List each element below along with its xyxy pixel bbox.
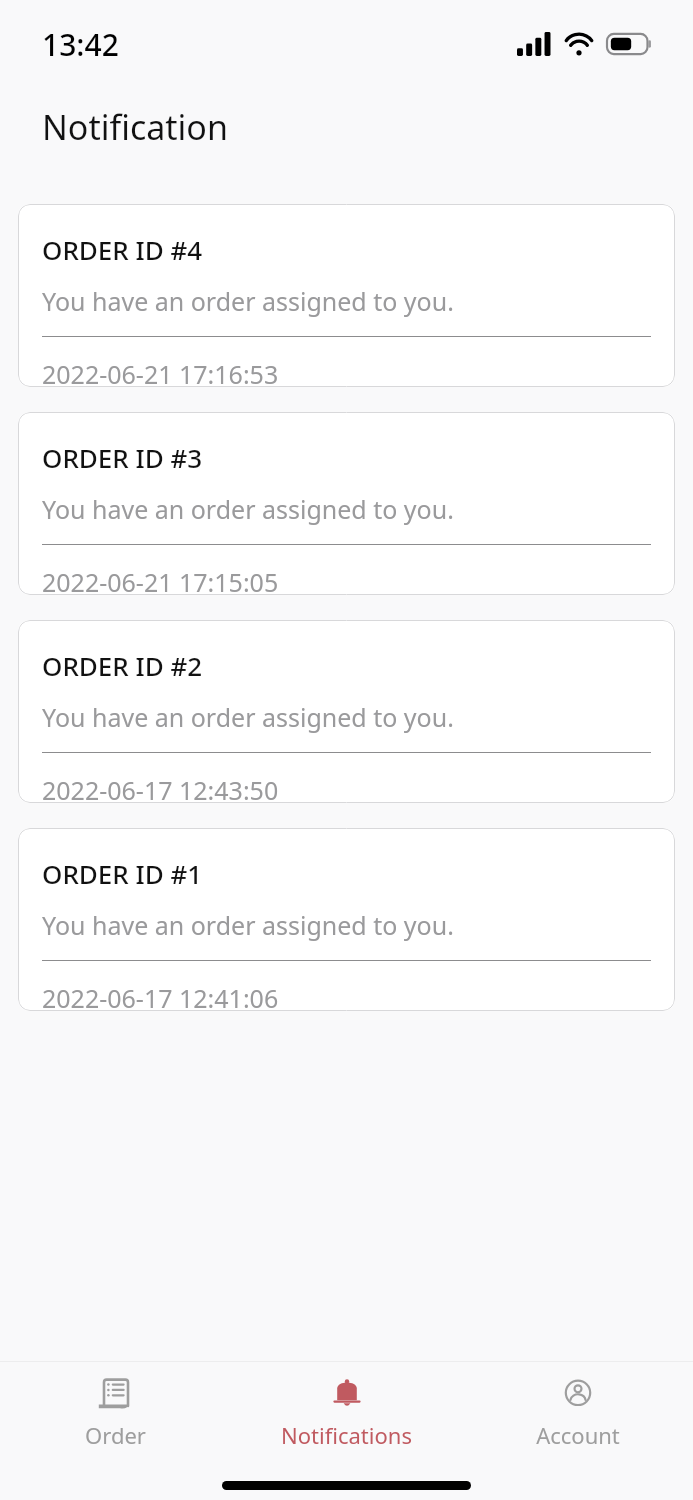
button[interactable]: ORDER ID #4 <box>18 204 675 387</box>
staticText: 2022-06-21 17:15:05 <box>42 565 279 595</box>
staticText: ORDER ID #1 <box>42 856 203 891</box>
staticText: Order <box>85 1420 146 1450</box>
button[interactable]: Order <box>0 1362 231 1450</box>
staticText: 2022-06-17 12:43:50 <box>42 773 279 803</box>
button[interactable]: ORDER ID #2 <box>18 620 675 803</box>
staticText: Account <box>536 1420 620 1450</box>
button[interactable]: ORDER ID #3 <box>18 412 675 595</box>
staticText: 2022-06-17 12:41:06 <box>42 981 279 1011</box>
staticText: You have an order assigned to you. <box>42 908 454 942</box>
button[interactable]: Notifications <box>231 1362 462 1450</box>
button[interactable]: Account <box>462 1362 693 1450</box>
staticText: You have an order assigned to you. <box>42 700 454 734</box>
staticText: Notification <box>42 104 228 150</box>
staticText: ORDER ID #3 <box>42 440 203 475</box>
staticText: ORDER ID #4 <box>42 232 203 267</box>
staticText: 2022-06-21 17:16:53 <box>42 357 279 387</box>
staticText: You have an order assigned to you. <box>42 284 454 318</box>
staticText: You have an order assigned to you. <box>42 492 454 526</box>
staticText: ORDER ID #2 <box>42 648 203 683</box>
staticText: 13:42 <box>42 24 119 65</box>
button[interactable]: ORDER ID #1 <box>18 828 675 1011</box>
staticText: Notifications <box>281 1420 412 1450</box>
